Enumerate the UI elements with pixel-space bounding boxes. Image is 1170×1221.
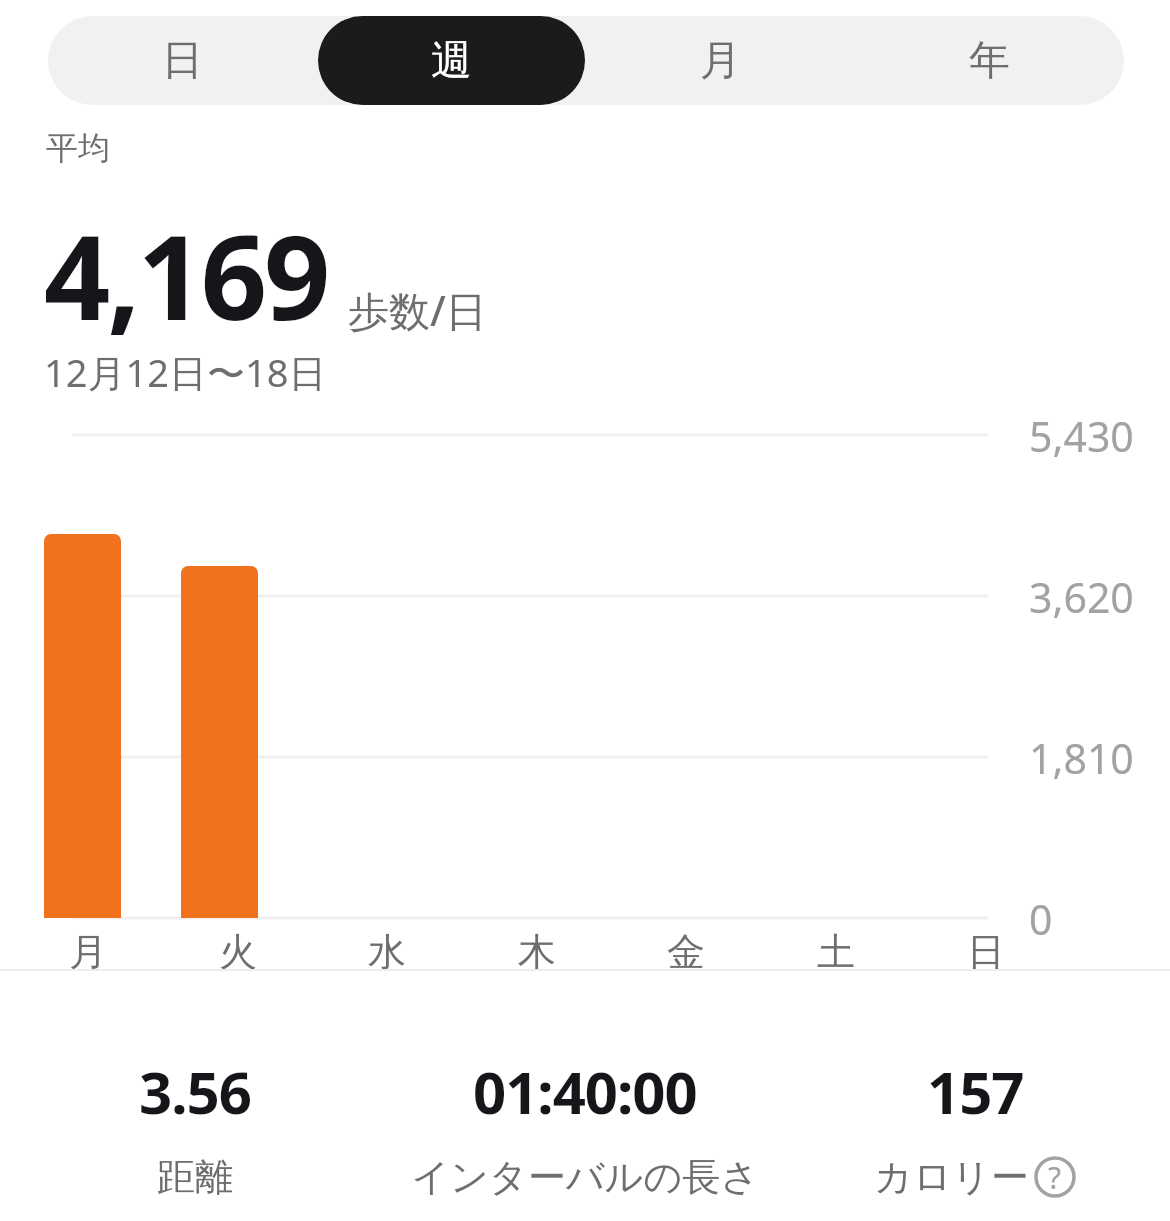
staticText: 水 [368, 928, 406, 976]
staticText: 日 [967, 928, 1005, 976]
button[interactable]: 年 [856, 16, 1123, 105]
button[interactable]: 3.56 [0, 1052, 390, 1201]
staticText: 月 [700, 35, 741, 87]
button[interactable]: ヘルプ [1033, 1155, 1077, 1199]
staticText: カロリー [874, 1153, 1029, 1201]
staticText: 1,810 [1029, 730, 1134, 786]
staticText: 5,430 [1029, 408, 1134, 464]
staticText: 金 [667, 928, 705, 976]
staticText: 0 [1029, 891, 1053, 947]
button[interactable]: 週 [318, 16, 585, 105]
staticText: 01:40:00 [473, 1052, 697, 1131]
staticText: 火 [219, 928, 257, 976]
staticText: インターバルの長さ [411, 1153, 760, 1201]
button[interactable]: 月 [587, 16, 854, 105]
staticText: 歩数/日 [348, 282, 487, 338]
staticText: 月 [69, 928, 107, 976]
staticText: 3.56 [139, 1052, 251, 1131]
staticText: 週 [431, 35, 472, 87]
staticText: 平均 [46, 128, 110, 168]
staticText: 土 [817, 928, 855, 976]
button[interactable]: 日 [49, 16, 316, 105]
staticText: 日 [162, 35, 203, 87]
staticText: 12月12日〜18日 [44, 346, 327, 398]
staticText: ? [1048, 1157, 1062, 1198]
staticText: 距離 [157, 1153, 233, 1201]
staticText: 157 [927, 1052, 1024, 1131]
staticText: 木 [518, 928, 556, 976]
staticText: 3,620 [1029, 569, 1134, 625]
button[interactable]: 157 [780, 1052, 1170, 1201]
staticText: 年 [969, 35, 1010, 87]
button[interactable]: 01:40:00 [390, 1052, 780, 1201]
staticText: 4,169 [44, 196, 328, 354]
